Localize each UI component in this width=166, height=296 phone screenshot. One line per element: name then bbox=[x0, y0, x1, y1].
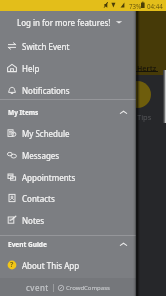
staticText: CrowdCompass bbox=[66, 284, 110, 292]
button[interactable]: My Schedule bbox=[0, 122, 136, 144]
button[interactable]: Log in for more features! bbox=[0, 11, 136, 33]
button[interactable]: Messages bbox=[0, 144, 136, 166]
staticText: 73% bbox=[129, 2, 142, 10]
staticText: Switch Event bbox=[22, 41, 70, 52]
staticText: Contacts bbox=[22, 193, 55, 204]
staticText: Log in for more features! bbox=[17, 17, 111, 28]
button[interactable]: Notes bbox=[0, 209, 136, 231]
button[interactable]: Help bbox=[0, 57, 136, 79]
staticText: Help bbox=[22, 63, 40, 74]
staticText: Notes bbox=[22, 215, 45, 226]
staticText: Messages bbox=[22, 150, 60, 161]
staticText: Appointments bbox=[22, 172, 76, 183]
staticText: Hertz bbox=[137, 64, 157, 74]
staticText: Tips bbox=[137, 112, 152, 122]
button[interactable]: Notifications bbox=[0, 79, 136, 101]
button[interactable]: Switch Event bbox=[0, 35, 136, 57]
button[interactable]: My Items bbox=[0, 101, 136, 123]
button[interactable]: Event Guide bbox=[0, 233, 136, 255]
other: Account menu bbox=[114, 17, 124, 27]
staticText: 04:44 bbox=[147, 2, 163, 10]
staticText: Notifications bbox=[22, 85, 70, 96]
button[interactable]: Contacts bbox=[0, 187, 136, 209]
staticText: ? bbox=[10, 260, 14, 270]
staticText: My Schedule bbox=[22, 128, 70, 139]
button[interactable]: Appointments bbox=[0, 166, 136, 188]
button[interactable]: ? bbox=[0, 254, 136, 276]
staticText: Event Guide bbox=[8, 240, 47, 249]
other: Collapse Event Guide bbox=[119, 240, 128, 249]
staticText: About This App bbox=[22, 260, 80, 271]
other: Collapse My Items bbox=[119, 108, 128, 117]
staticText: My Items bbox=[8, 108, 39, 117]
staticText: cvent bbox=[26, 282, 49, 293]
